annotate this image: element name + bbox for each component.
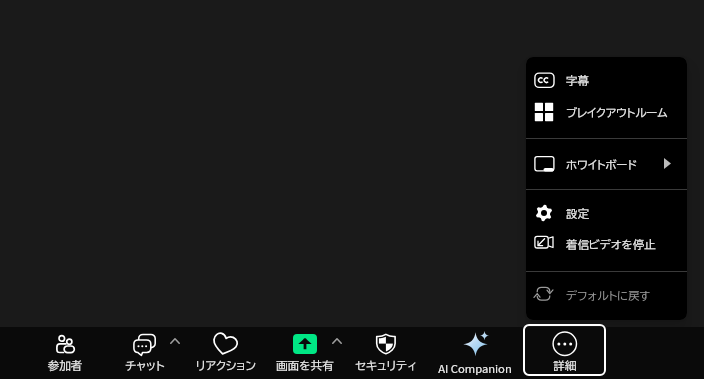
staticText: ブレイクアウトルーム: [566, 107, 668, 118]
staticText: リアクション: [188, 360, 264, 372]
staticText: セキュリティ: [348, 360, 424, 372]
staticText: 着信ビデオを停止: [566, 239, 656, 250]
staticText: 字幕: [566, 75, 589, 86]
staticText: 画面を共有: [267, 360, 343, 372]
staticText: チャット: [107, 360, 183, 372]
staticText: 設定: [566, 208, 589, 219]
button[interactable]: チャット: [107, 327, 183, 379]
button[interactable]: リアクション: [188, 327, 264, 379]
button[interactable]: AI Companion: [425, 327, 525, 379]
button[interactable]: デフォルトに戻す: [526, 282, 687, 308]
staticText: 参加者: [27, 360, 103, 372]
staticText: 詳細: [527, 360, 603, 372]
button[interactable]: 着信ビデオを停止: [526, 231, 687, 257]
staticText: ホワイトボード: [566, 159, 638, 170]
button[interactable]: 設定: [526, 200, 687, 226]
button[interactable]: 詳細: [527, 327, 603, 379]
button[interactable]: ブレイクアウトルーム: [526, 99, 687, 125]
button[interactable]: 参加者: [27, 327, 103, 379]
button[interactable]: ホワイトボード: [526, 151, 687, 177]
button[interactable]: 字幕: [526, 67, 687, 93]
button[interactable]: 画面を共有: [267, 327, 343, 379]
button[interactable]: セキュリティ: [348, 327, 424, 379]
staticText: デフォルトに戻す: [566, 290, 651, 301]
button[interactable]: 詳細: [523, 324, 606, 376]
staticText: AI Companion: [425, 360, 525, 378]
